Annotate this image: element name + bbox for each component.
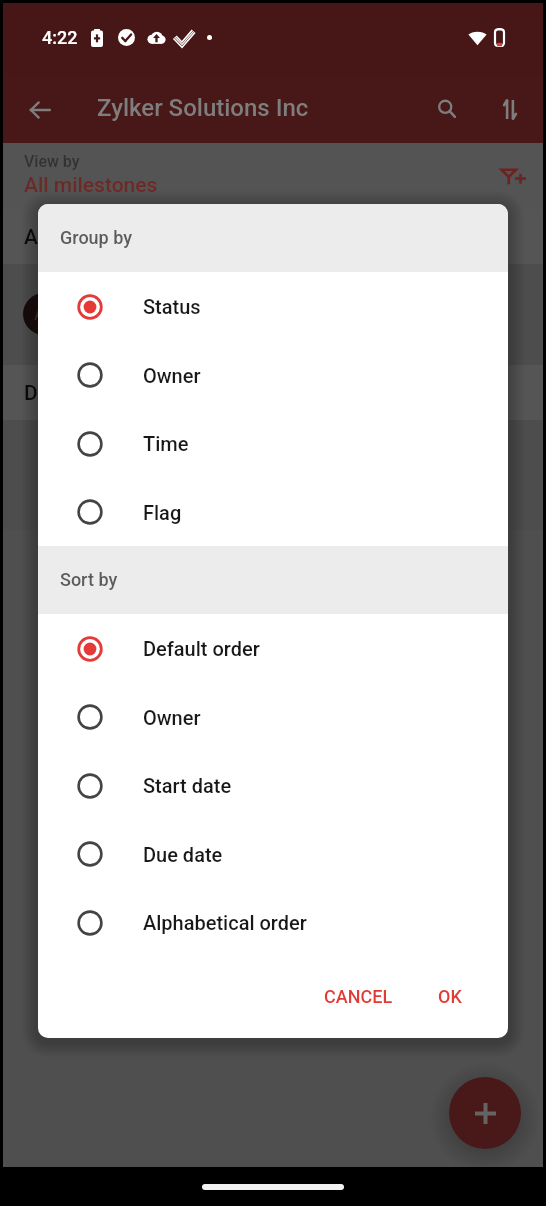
- button[interactable]: CANCEL: [316, 977, 401, 1018]
- staticText: CANCEL: [324, 986, 393, 1007]
- button[interactable]: Search: [423, 85, 471, 133]
- button[interactable]: Add: [449, 1077, 521, 1149]
- staticText: All milestones: [24, 173, 158, 198]
- staticText: Zylker Solutions Inc: [97, 94, 309, 122]
- button[interactable]: Time: [38, 409, 508, 478]
- staticText: Alphabetical order: [143, 911, 307, 934]
- staticText: Default order: [143, 637, 260, 660]
- staticText: Owner: [143, 364, 201, 387]
- button[interactable]: Owner: [38, 683, 508, 751]
- staticText: Sort by: [60, 569, 118, 590]
- button[interactable]: Flag: [38, 478, 508, 546]
- staticText: Due date: [143, 843, 223, 866]
- button[interactable]: Add filter: [491, 154, 535, 198]
- staticText: AJ: [34, 305, 54, 324]
- staticText: 4:22: [42, 27, 78, 48]
- staticText: Prepare design brief: [79, 292, 242, 313]
- staticText: Design phase: [24, 381, 151, 406]
- staticText: Owner: [143, 706, 201, 729]
- staticText: Time: [143, 432, 189, 455]
- button[interactable]: Due date: [38, 820, 508, 888]
- staticText: View by: [24, 152, 80, 171]
- button[interactable]: OK: [430, 977, 470, 1018]
- button[interactable]: Owner: [38, 341, 508, 409]
- button[interactable]: Sort: [486, 85, 534, 133]
- staticText: Group by: [60, 227, 133, 248]
- button[interactable]: Back: [16, 86, 64, 134]
- staticText: OK: [438, 986, 462, 1007]
- button[interactable]: Status: [38, 272, 508, 341]
- staticText: Status: [143, 295, 201, 318]
- button[interactable]: Start date: [38, 751, 508, 820]
- staticText: Flag: [143, 501, 182, 524]
- staticText: All tasks: [24, 225, 105, 250]
- staticText: Start date: [143, 774, 232, 797]
- button[interactable]: Alphabetical order: [38, 888, 508, 957]
- button[interactable]: Default order: [38, 614, 508, 683]
